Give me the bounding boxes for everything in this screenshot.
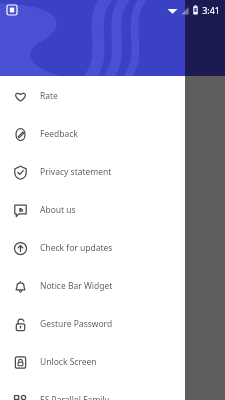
staticText: About us [40,204,76,216]
button[interactable]: Notice Bar Widget [0,267,185,305]
button[interactable]: ES Parallel Family [0,381,185,400]
button[interactable]: Privacy statement [0,153,185,191]
button[interactable]: Rate [0,77,185,115]
staticText: Unlock Screen [40,356,97,368]
staticText: Check for updates [40,242,113,254]
button[interactable]: Check for updates [0,229,185,267]
other: Notification [7,5,17,15]
staticText: 3:41 [202,4,220,16]
staticText: Privacy statement [40,166,112,178]
staticText: Feedback [40,128,78,140]
button[interactable]: Feedback [0,115,185,153]
staticText: Gesture Password [40,318,113,330]
button[interactable]: Gesture Password [0,305,185,343]
staticText: ES Parallel Family [40,394,110,400]
staticText: Rate [40,90,58,102]
button[interactable]: Unlock Screen [0,343,185,381]
staticText: Notice Bar Widget [40,280,113,292]
button[interactable]: About us [0,191,185,229]
